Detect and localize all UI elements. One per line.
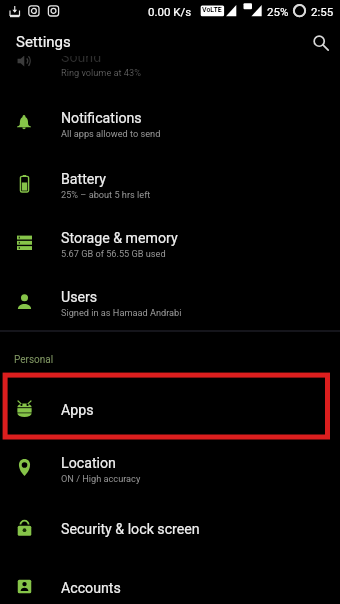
button[interactable]: Notifications — [0, 92, 340, 152]
button[interactable]: Security & lock screen — [0, 497, 340, 557]
button[interactable]: Battery — [0, 153, 340, 213]
staticText: Notifications — [61, 110, 142, 127]
staticText: Users — [61, 289, 98, 306]
staticText: 25% – about 5 hrs left — [61, 189, 151, 200]
staticText: Location — [61, 455, 116, 472]
button[interactable]: Apps — [0, 378, 340, 438]
staticText: ON / High accuracy — [61, 473, 141, 484]
button[interactable]: Search — [306, 28, 336, 58]
staticText: 2:55 — [311, 5, 334, 18]
staticText: All apps allowed to send — [61, 128, 161, 139]
staticText: Battery — [61, 171, 107, 188]
staticText: Ring volume at 43% — [61, 67, 141, 78]
staticText: Storage & memory — [61, 230, 178, 247]
staticText: Sound — [61, 49, 102, 66]
button[interactable]: Storage & memory — [0, 212, 340, 272]
button[interactable]: Location — [0, 437, 340, 497]
button[interactable]: Sound — [0, 31, 340, 91]
button[interactable]: Users — [0, 271, 340, 331]
staticText: Signed in as Hamaad Andrabi — [61, 307, 182, 318]
staticText: 0.00 K/s — [148, 5, 192, 18]
staticText: Personal — [14, 354, 54, 366]
button[interactable]: Accounts — [0, 556, 340, 604]
staticText: Security & lock screen — [61, 521, 200, 538]
staticText: 5.67 GB of 56.55 GB used — [61, 248, 166, 259]
staticText: Accounts — [61, 580, 121, 597]
staticText: Apps — [61, 402, 94, 419]
staticText: VoLTE — [202, 6, 222, 14]
staticText: 25% — [267, 5, 289, 18]
staticText: Settings — [16, 33, 71, 51]
